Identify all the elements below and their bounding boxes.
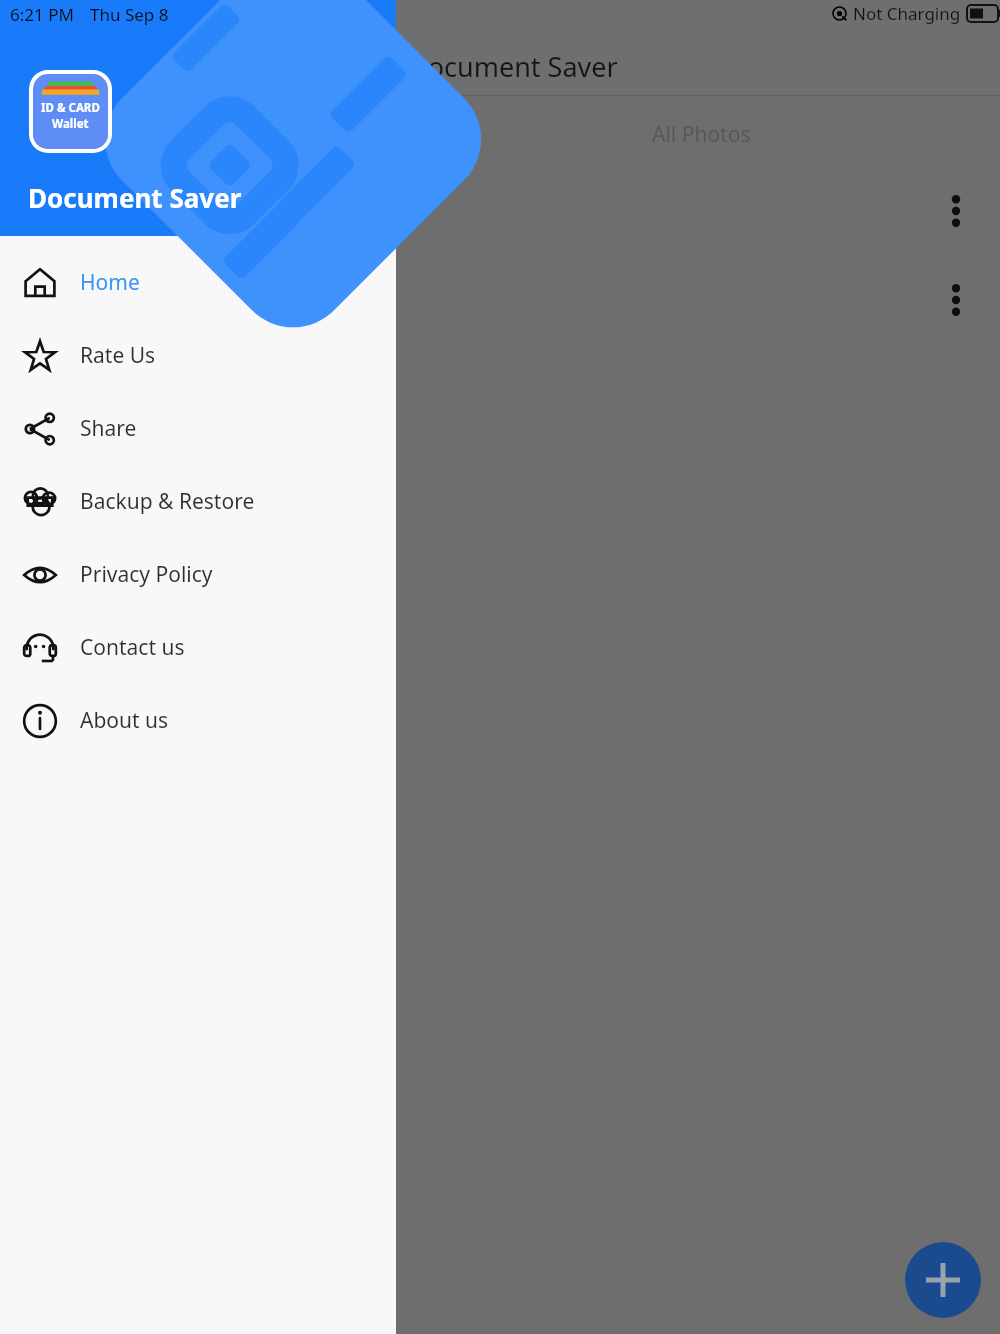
button[interactable]: Share [0, 392, 396, 465]
staticText: Document Saver [28, 180, 242, 215]
button[interactable]: Privacy Policy [0, 538, 396, 611]
button[interactable]: Contact us [0, 611, 396, 684]
staticText: Privacy Policy [80, 560, 213, 589]
staticText: Wallet [52, 116, 89, 132]
button[interactable]: Home [0, 246, 396, 319]
button[interactable]: Backup & Restore [0, 465, 396, 538]
button[interactable]: More options [936, 277, 976, 323]
staticText: Document Saver [408, 48, 618, 85]
button[interactable]: Add [905, 1242, 981, 1318]
staticText: 6:21 PM [10, 3, 74, 26]
button[interactable]: About us [0, 684, 396, 757]
staticText: ID & CARD [41, 100, 100, 116]
staticText: Not Charging [853, 2, 961, 24]
staticText: Home [80, 268, 140, 297]
staticText: All Photos [652, 120, 751, 149]
staticText: About us [80, 706, 169, 735]
button[interactable]: More options [936, 188, 976, 234]
staticText: Share [80, 414, 137, 443]
staticText: Rate Us [80, 341, 156, 370]
button[interactable]: Rate Us [0, 319, 396, 392]
staticText: Contact us [80, 633, 185, 662]
staticText: Thu Sep 8 [90, 3, 169, 26]
staticText: Backup & Restore [80, 487, 255, 516]
